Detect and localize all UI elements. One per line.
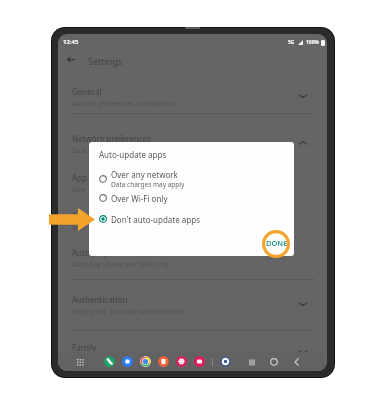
button[interactable]: Family <box>58 329 327 371</box>
button[interactable]: Camera <box>194 356 205 367</box>
staticText: 12:45 <box>63 38 79 46</box>
button[interactable]: General <box>58 73 327 120</box>
button[interactable]: Auto-play videos <box>58 239 327 277</box>
button[interactable]: Over any network <box>89 166 294 192</box>
button[interactable]: App download preferences <box>58 164 327 202</box>
button[interactable]: Back <box>62 50 80 68</box>
staticText: Settings <box>88 55 123 67</box>
button[interactable]: Over Wi-Fi only <box>89 188 294 208</box>
button[interactable]: Back <box>289 355 303 369</box>
button[interactable]: Settings <box>220 356 231 367</box>
staticText: Data charges may apply <box>111 180 185 189</box>
staticText: DONE <box>266 238 288 248</box>
button[interactable]: Play Store <box>158 356 169 367</box>
staticText: General <box>72 86 102 97</box>
button[interactable]: Authentication <box>58 281 327 328</box>
staticText: Over Wi-Fi only <box>72 223 118 232</box>
button[interactable]: Network preferences <box>58 120 327 167</box>
staticText: Don't auto-update apps <box>111 214 200 225</box>
staticText: 100% <box>306 39 320 46</box>
staticText: Parental controls <box>72 355 124 364</box>
staticText: Auto-play videos over Wi-Fi only <box>72 260 169 269</box>
button[interactable]: Phone <box>104 356 115 367</box>
button[interactable]: Chrome <box>140 356 151 367</box>
staticText: Auto-play videos <box>72 247 135 258</box>
staticText: Auto-update apps <box>72 210 140 221</box>
staticText: Over any network <box>72 185 127 194</box>
staticText: Fingerprint, purchase authentication <box>72 307 184 316</box>
staticText: Auto-update apps <box>99 149 167 160</box>
staticText: Family <box>72 342 97 353</box>
staticText: Over Wi-Fi only <box>111 193 168 204</box>
button[interactable]: Gallery <box>176 356 187 367</box>
button[interactable]: Recent apps <box>245 355 259 369</box>
staticText: Data usage, auto-update apps <box>72 146 165 155</box>
staticText: App download preferences <box>72 172 173 183</box>
button[interactable]: Messages <box>122 356 133 367</box>
staticText: Account preferences, notifications <box>72 99 176 108</box>
button[interactable]: DONE <box>264 235 290 250</box>
staticText: 5G <box>288 39 295 46</box>
staticText: Network preferences <box>72 133 151 144</box>
staticText: Over any network <box>111 169 178 180</box>
staticText: Authentication <box>72 294 128 305</box>
button[interactable]: All apps <box>73 355 86 368</box>
button[interactable]: Don't auto-update apps <box>89 209 294 229</box>
button[interactable]: Auto-update apps <box>58 202 327 240</box>
button[interactable]: Home <box>267 355 281 369</box>
